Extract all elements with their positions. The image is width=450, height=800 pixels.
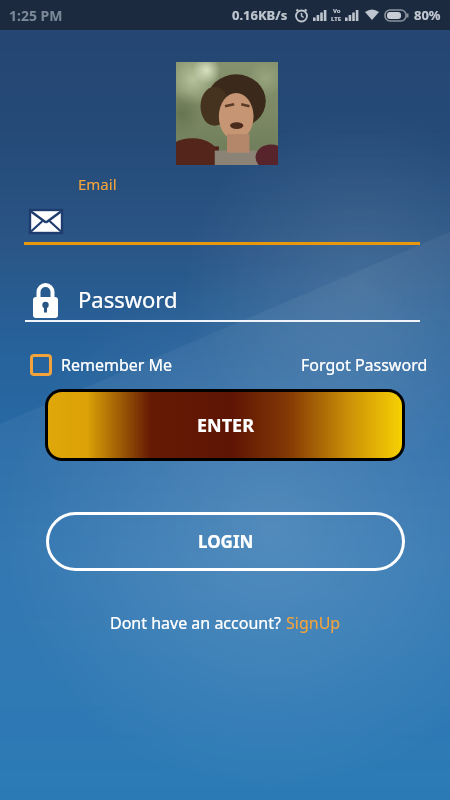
button[interactable] [30,354,52,376]
staticText: Vo [333,7,341,15]
staticText: Password [78,284,178,314]
button[interactable]: ENTER [48,392,402,458]
staticText: Remember Me [61,354,173,376]
staticText: ENTER [197,413,254,438]
staticText: LOGIN [198,530,254,553]
button[interactable]: Password [25,280,420,322]
button[interactable]: Forgot Password [301,354,428,376]
button[interactable]: SignUp [286,612,341,634]
button[interactable]: LOGIN [46,512,405,571]
staticText: 0.16KB/s [232,6,288,24]
staticText: Dont have an account? [110,612,286,634]
staticText: Email [78,174,117,194]
staticText: 80% [414,6,441,24]
staticText: 1:25 PM [9,6,63,25]
button[interactable] [24,203,420,245]
staticText: LTE [331,15,342,23]
